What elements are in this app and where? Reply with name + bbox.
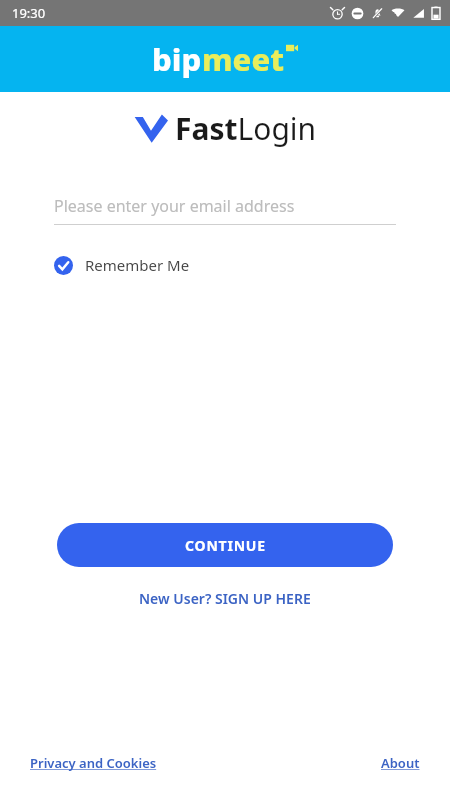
staticText: Remember Me: [85, 255, 190, 275]
button[interactable]: About: [381, 750, 420, 776]
button[interactable]: Please enter your email address: [54, 195, 396, 225]
button[interactable]: New User? SIGN UP HERE: [133, 583, 317, 614]
button[interactable]: Remember Me: [54, 255, 190, 275]
staticText: 19:30: [12, 4, 46, 22]
button[interactable]: Privacy and Cookies: [30, 750, 157, 776]
staticText: bip: [152, 38, 202, 80]
staticText: meet: [202, 38, 285, 80]
staticText: Please enter your email address: [54, 195, 295, 217]
button[interactable]: CONTINUE: [57, 523, 393, 567]
staticText: FastLogin: [175, 108, 317, 149]
staticText: CONTINUE: [185, 536, 266, 555]
